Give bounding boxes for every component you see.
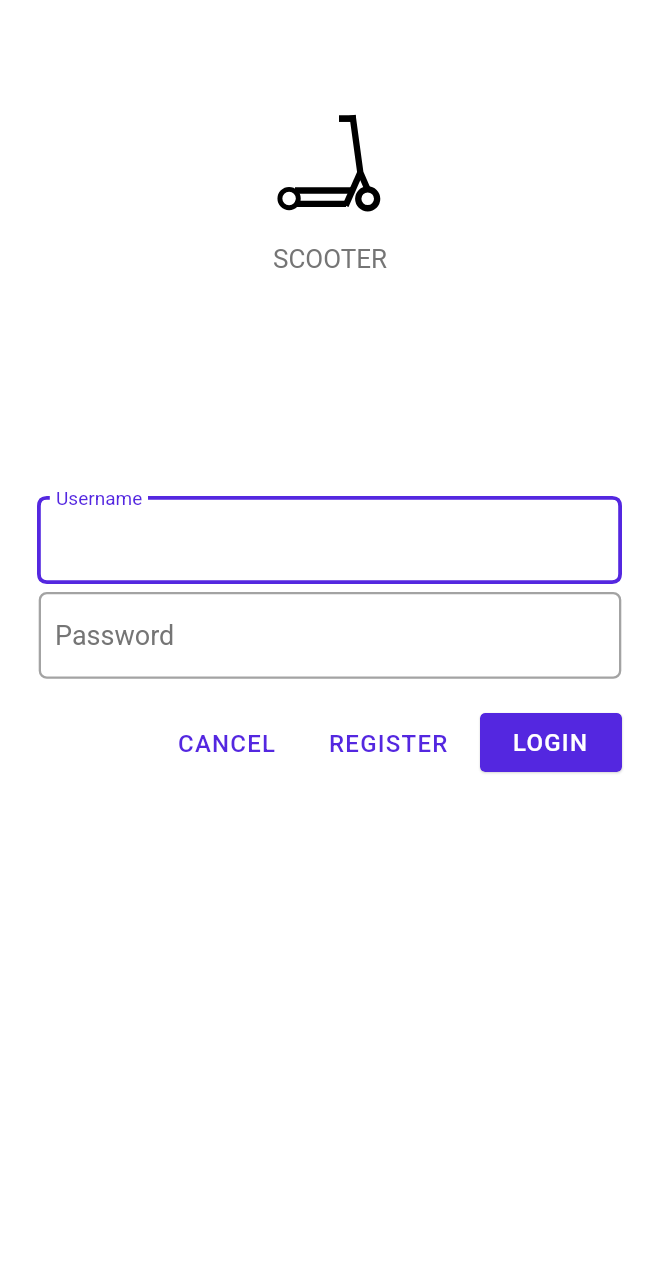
staticText: REGISTER: [329, 730, 449, 758]
staticText: Password: [55, 620, 175, 652]
staticText: CANCEL: [178, 730, 277, 758]
button[interactable]: REGISTER: [312, 714, 465, 773]
button[interactable]: LOGIN: [480, 713, 622, 772]
button[interactable]: [37, 496, 622, 584]
staticText: SCOOTER: [1, 244, 658, 274]
staticText: Username: [56, 487, 143, 509]
button[interactable]: Password: [38, 591, 622, 679]
staticText: LOGIN: [513, 729, 589, 757]
other: Scooter logo: [270, 105, 390, 217]
button[interactable]: CANCEL: [162, 714, 293, 773]
